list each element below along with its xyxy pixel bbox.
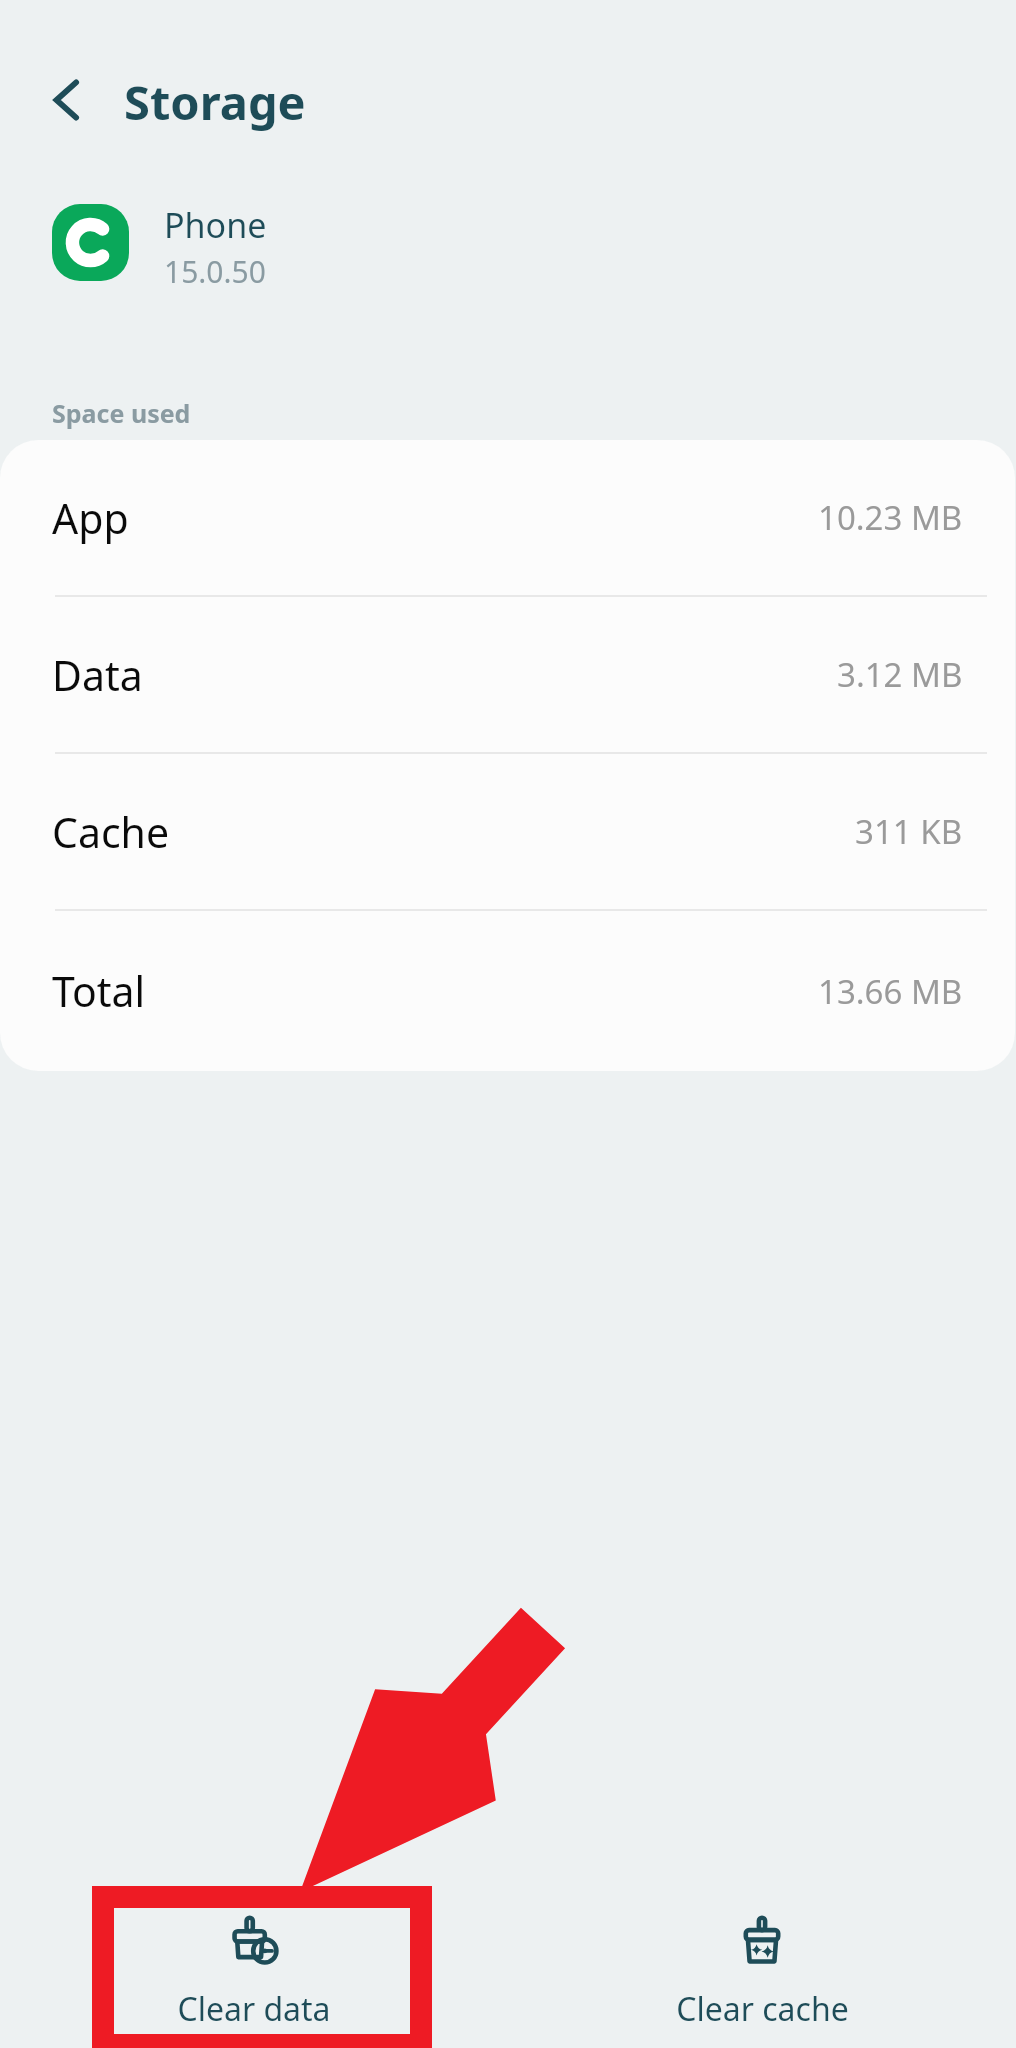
staticText: Total [52, 963, 146, 1019]
staticText: Data [52, 647, 143, 703]
staticText: Space used [52, 396, 191, 430]
button[interactable]: Data [0, 597, 1015, 754]
button[interactable]: Clear data [0, 1898, 508, 2048]
staticText: App [52, 490, 129, 546]
staticText: Clear cache [676, 1987, 849, 2031]
staticText: Clear data [177, 1987, 331, 2031]
staticText: 10.23 MB [818, 495, 963, 540]
staticText: 15.0.50 [164, 251, 266, 292]
staticText: Phone [164, 202, 267, 248]
staticText: Storage [124, 70, 306, 134]
staticText: 311 KB [855, 809, 963, 854]
staticText: Cache [52, 804, 170, 860]
button[interactable]: Total [0, 911, 1015, 1071]
staticText: 3.12 MB [837, 652, 963, 697]
staticText: 13.66 MB [818, 969, 963, 1014]
button[interactable]: Clear cache [508, 1898, 1016, 2048]
button[interactable]: Back [34, 66, 102, 134]
button[interactable]: App [0, 440, 1015, 597]
button[interactable]: Cache [0, 754, 1015, 911]
